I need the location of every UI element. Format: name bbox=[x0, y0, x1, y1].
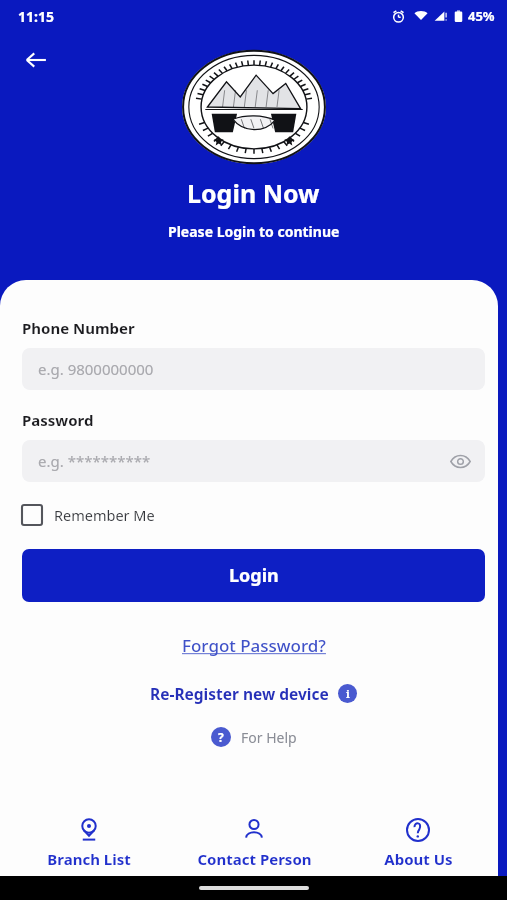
button[interactable]: Login bbox=[22, 549, 485, 602]
staticText: 45% bbox=[468, 7, 495, 25]
button[interactable]: Branch List bbox=[14, 814, 164, 873]
staticText: Phone Number bbox=[22, 318, 135, 338]
button[interactable]: e.g. 9800000000 bbox=[22, 348, 485, 390]
button[interactable]: About Us bbox=[343, 814, 493, 873]
staticText: For Help bbox=[241, 728, 297, 747]
staticText: Forgot Password? bbox=[182, 634, 326, 657]
staticText: Branch List bbox=[47, 849, 131, 869]
staticText: 11:15 bbox=[18, 7, 54, 26]
button[interactable]: Forgot Password? bbox=[176, 628, 332, 663]
staticText: Contact Person bbox=[197, 849, 312, 869]
button[interactable]: Back bbox=[16, 40, 56, 80]
staticText: e.g. ********** bbox=[38, 451, 151, 471]
staticText: Login Now bbox=[187, 176, 320, 210]
button[interactable]: Re-Register new device bbox=[146, 679, 361, 708]
staticText: Login bbox=[229, 563, 279, 588]
button[interactable]: Remember Me bbox=[22, 503, 155, 527]
staticText: Re-Register new device bbox=[150, 683, 329, 704]
staticText: About Us bbox=[384, 849, 453, 869]
button[interactable]: Show password bbox=[443, 444, 477, 478]
staticText: Please Login to continue bbox=[168, 222, 340, 241]
staticText: Password bbox=[22, 410, 94, 430]
button[interactable]: e.g. ********** bbox=[22, 440, 485, 482]
staticText: i bbox=[346, 686, 350, 701]
staticText: Remember Me bbox=[54, 505, 155, 525]
button[interactable]: ? bbox=[207, 723, 301, 751]
staticText: e.g. 9800000000 bbox=[38, 359, 154, 379]
staticText: ? bbox=[218, 729, 224, 745]
button[interactable]: Contact Person bbox=[179, 814, 329, 873]
